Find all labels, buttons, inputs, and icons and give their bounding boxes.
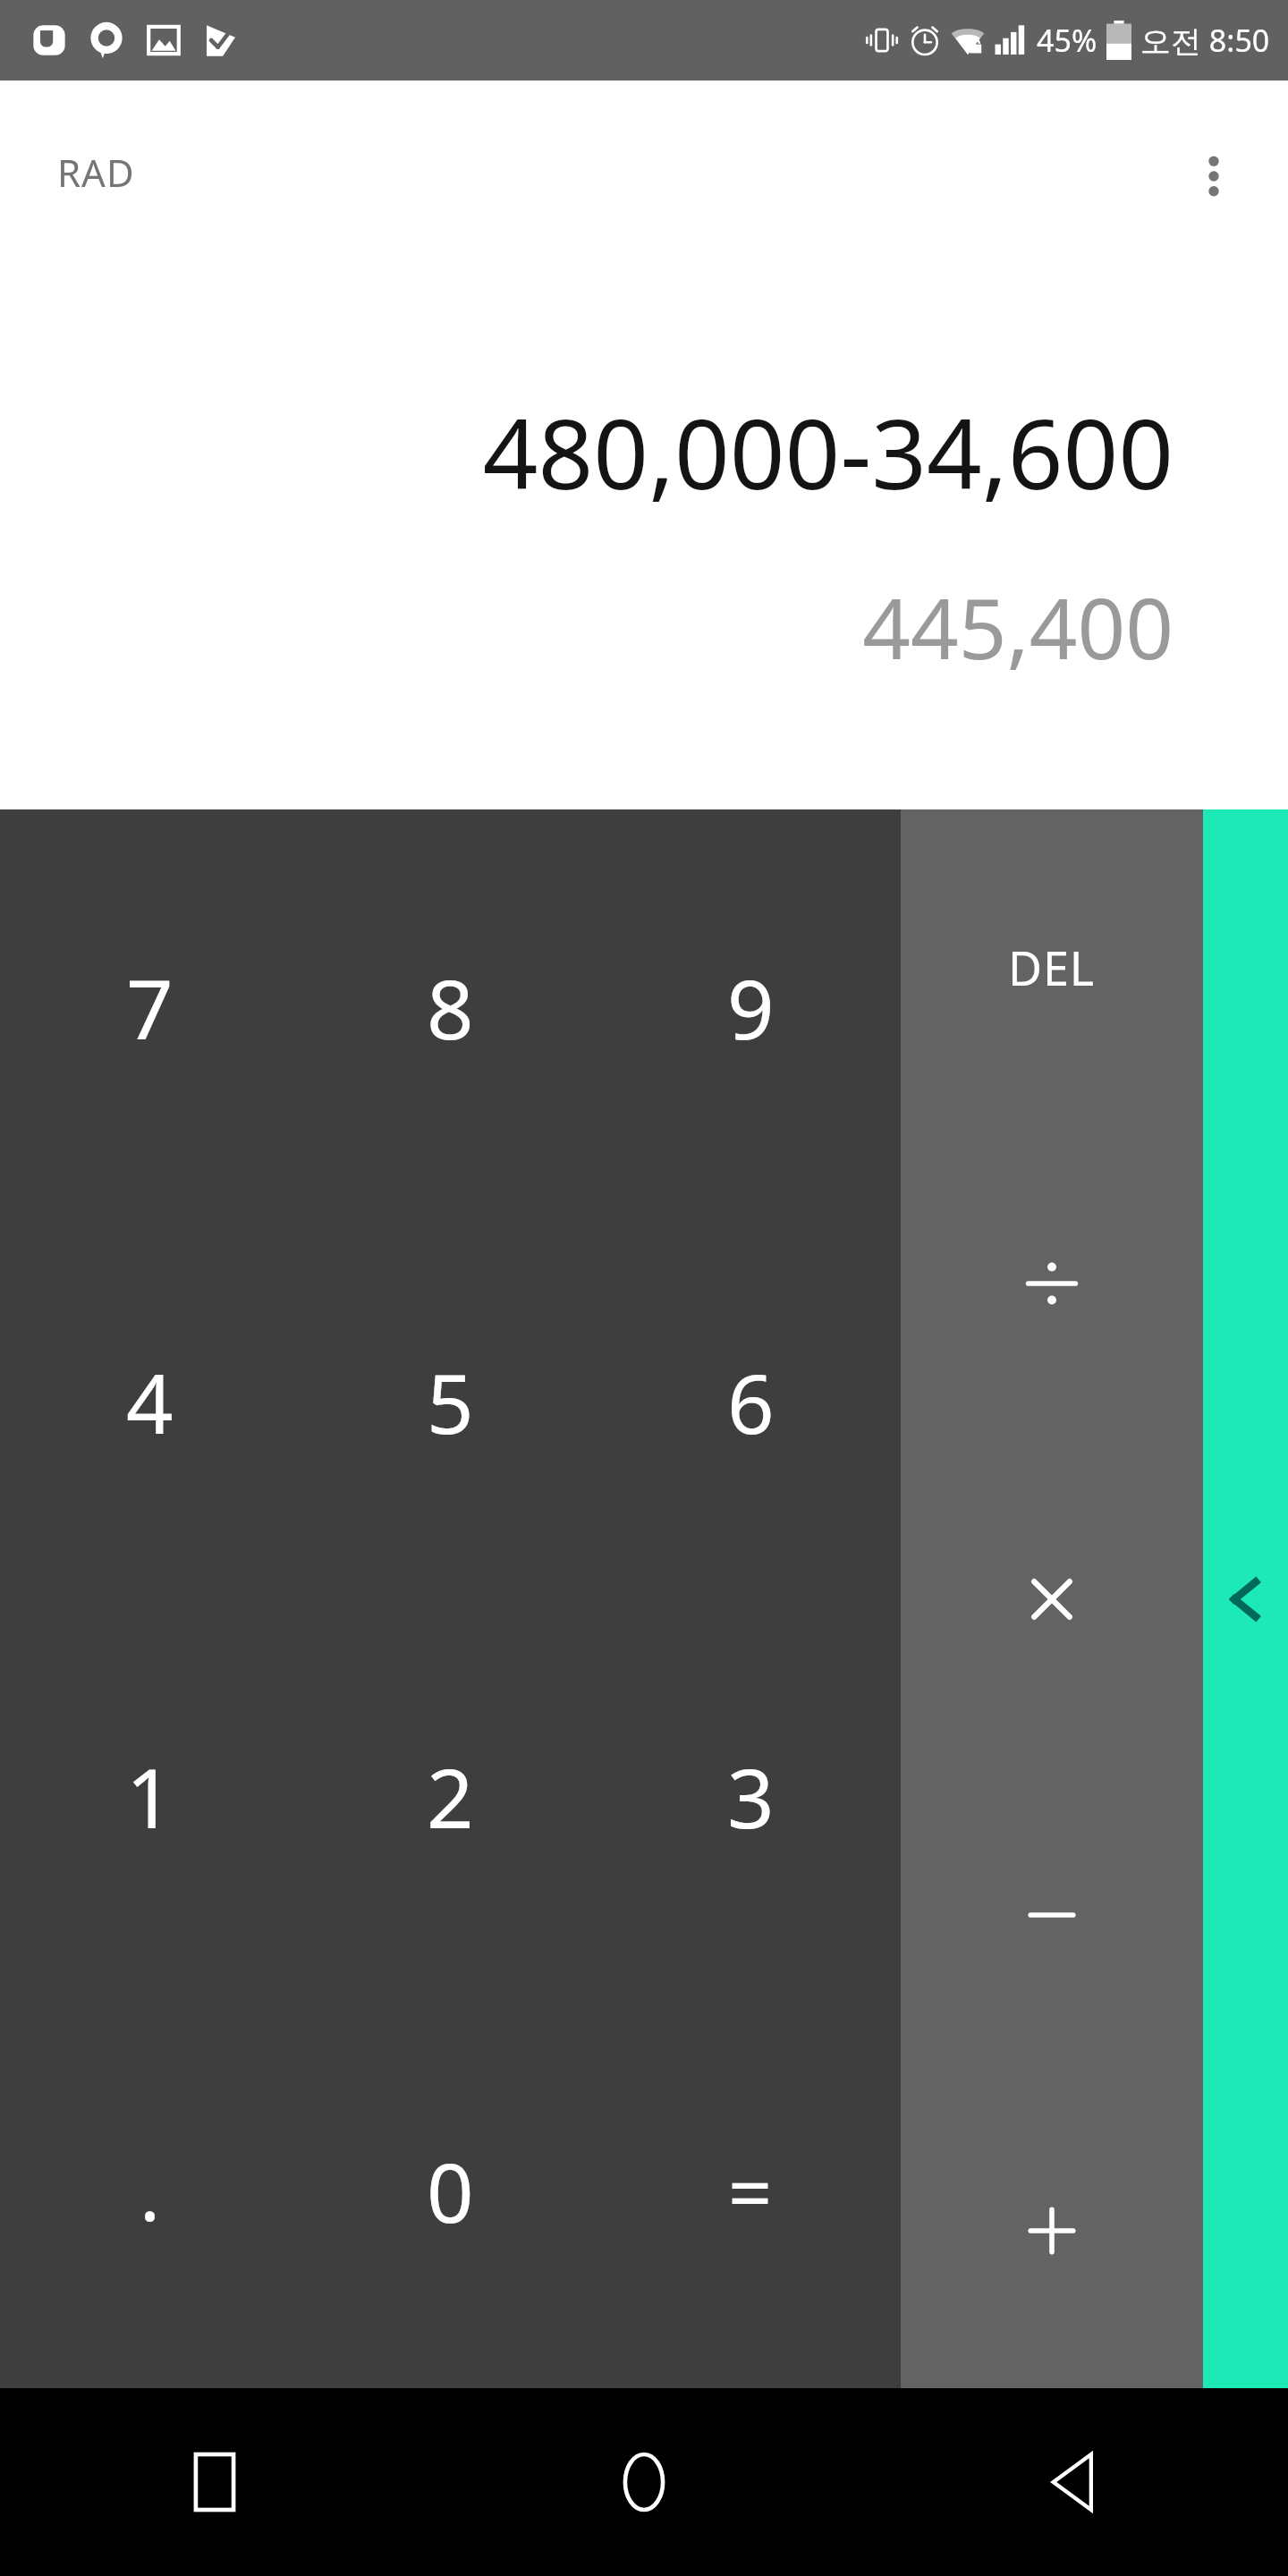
button[interactable]: Recent apps — [0, 2388, 429, 2576]
button[interactable]: Back — [859, 2388, 1288, 2576]
staticText: 3 — [727, 1741, 775, 1852]
staticText: . — [140, 2139, 161, 2243]
button[interactable]: Home — [429, 2388, 859, 2576]
button[interactable]: 1 — [0, 1599, 300, 1994]
staticText: 445,400 — [862, 570, 1174, 684]
button[interactable]: Divide — [901, 1125, 1203, 1441]
button[interactable]: 3 — [600, 1599, 901, 1994]
staticText: 8 — [427, 952, 474, 1063]
staticText: 5 — [427, 1346, 474, 1458]
staticText: 7 — [126, 952, 174, 1063]
button[interactable]: = — [600, 1994, 901, 2388]
button[interactable]: RAD — [36, 134, 157, 210]
button[interactable]: 8 — [300, 809, 600, 1205]
button[interactable]: 6 — [600, 1205, 901, 1599]
button[interactable]: 5 — [300, 1205, 600, 1599]
staticText: 9 — [727, 952, 775, 1063]
button[interactable]: 9 — [600, 809, 901, 1205]
button[interactable]: Subtract — [901, 1757, 1203, 2072]
button[interactable]: Add — [901, 2072, 1203, 2388]
staticText: DEL — [1008, 936, 1096, 999]
staticText: RAD — [57, 147, 135, 198]
button[interactable]: 0 — [300, 1994, 600, 2388]
staticText: 4 — [126, 1346, 174, 1458]
button[interactable]: . — [0, 1994, 300, 2388]
staticText: 0 — [427, 2135, 474, 2247]
button[interactable]: 7 — [0, 809, 300, 1205]
staticText: 1 — [126, 1741, 174, 1852]
button[interactable]: 2 — [300, 1599, 600, 1994]
staticText: 480,000-34,600 — [482, 386, 1174, 518]
staticText: 2 — [427, 1741, 474, 1852]
staticText: 오전 8:50 — [1140, 20, 1270, 61]
button[interactable]: Open advanced pad — [1203, 809, 1288, 2388]
button[interactable]: DEL — [901, 809, 1203, 1125]
staticText: 6 — [727, 1346, 775, 1458]
button[interactable]: 4 — [0, 1205, 300, 1599]
button[interactable]: Multiply — [901, 1441, 1203, 1757]
staticText: 45% — [1037, 20, 1097, 61]
staticText: = — [728, 2139, 773, 2243]
button[interactable]: More options — [1165, 127, 1263, 225]
